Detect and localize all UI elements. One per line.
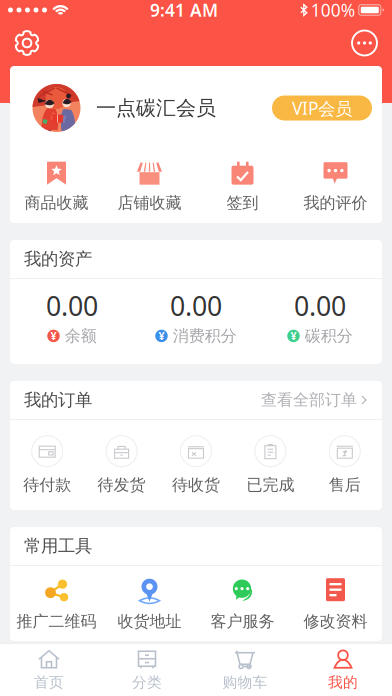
button[interactable]: 修改资料 — [289, 576, 382, 631]
staticText: 待付款 — [23, 475, 71, 495]
button[interactable]: Settings — [14, 30, 40, 56]
button[interactable]: 客户服务 — [196, 576, 289, 631]
staticText: 待收货 — [172, 475, 220, 495]
staticText: 分类 — [132, 673, 162, 691]
button[interactable]: 首页 — [0, 643, 98, 696]
button[interactable]: 已完成 — [233, 435, 308, 495]
button[interactable]: 我的评价 — [289, 160, 382, 213]
button[interactable]: 分类 — [98, 643, 196, 696]
button[interactable]: 商品收藏 — [10, 160, 103, 213]
button[interactable]: 购物车 — [196, 643, 294, 696]
staticText: 我的评价 — [303, 193, 367, 213]
button[interactable]: VIP会员 — [272, 95, 372, 120]
staticText: 我的资产 — [24, 248, 92, 270]
staticText: 消费积分 — [173, 326, 237, 346]
button[interactable]: 推广二维码 — [10, 576, 103, 631]
button[interactable]: Messages — [351, 29, 378, 56]
staticText: 收货地址 — [117, 612, 181, 631]
staticText: 我的 — [328, 673, 358, 691]
button[interactable]: 店铺收藏 — [103, 160, 196, 213]
staticText: 购物车 — [222, 673, 267, 691]
staticText: 0.00 — [170, 288, 222, 323]
staticText: 待发货 — [98, 475, 146, 495]
staticText: 一点碳汇会员 — [96, 96, 216, 120]
staticText: 常用工具 — [24, 535, 92, 557]
button[interactable]: 待发货 — [84, 435, 159, 495]
staticText: 店铺收藏 — [117, 193, 181, 213]
button[interactable]: 售后 — [308, 435, 382, 495]
button[interactable]: 待付款 — [10, 435, 84, 495]
staticText: 余额 — [65, 326, 97, 346]
staticText: 首页 — [34, 673, 64, 691]
staticText: 9:41 AM — [150, 0, 218, 21]
staticText: 已完成 — [246, 475, 294, 495]
staticText: 我的订单 — [24, 389, 92, 411]
staticText: 100% — [311, 0, 355, 21]
staticText: VIP会员 — [292, 96, 352, 119]
staticText: 0.00 — [46, 288, 98, 323]
staticText: 0.00 — [294, 288, 346, 323]
staticText: 推广二维码 — [16, 612, 96, 631]
button[interactable]: 我的 — [294, 643, 392, 696]
staticText: 签到 — [226, 193, 258, 213]
staticText: ¥ — [290, 329, 296, 343]
button[interactable]: 签到 — [196, 160, 289, 213]
staticText: 客户服务 — [210, 612, 274, 631]
staticText: 售后 — [329, 475, 361, 495]
staticText: 碳积分 — [305, 326, 353, 346]
staticText: ¥ — [50, 329, 56, 343]
staticText: 查看全部订单 — [261, 390, 357, 410]
staticText: 修改资料 — [303, 612, 367, 631]
staticText: 商品收藏 — [24, 193, 88, 213]
button[interactable]: 收货地址 — [103, 576, 196, 631]
staticText: ¥ — [158, 329, 164, 343]
button[interactable]: 待收货 — [159, 435, 233, 495]
